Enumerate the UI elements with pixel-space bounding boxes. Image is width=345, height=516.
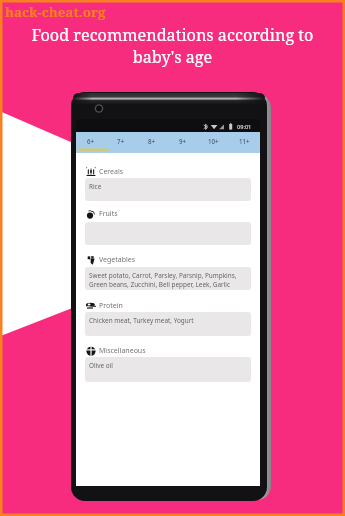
button[interactable]: Cereals (86, 167, 124, 177)
staticText: Fruits (99, 209, 118, 219)
staticText: 7+ (117, 137, 125, 145)
staticText: 9+ (179, 137, 187, 145)
staticText: Miscellaneous (99, 346, 146, 356)
button[interactable]: Fruits (86, 209, 118, 219)
staticText: Protein (99, 301, 123, 311)
staticText: Vegetables (99, 255, 136, 265)
button[interactable]: Protein (86, 301, 123, 311)
button[interactable]: 6+ (76, 132, 106, 153)
staticText: Cereals (99, 167, 124, 177)
button[interactable]: 8+ (136, 132, 167, 153)
staticText: 09:01 (237, 123, 252, 131)
button[interactable]: Chicken meat, Turkey meat, Yogurt (85, 312, 251, 336)
staticText: Sweet potato, Carrot, Parsley, Parsnip, … (89, 271, 237, 280)
button[interactable]: Olive oil (85, 357, 251, 382)
button[interactable]: Sweet potato, Carrot, Parsley, Parsnip, … (85, 267, 251, 290)
button[interactable]: Rice (85, 178, 251, 201)
button[interactable]: Miscellaneous (86, 346, 146, 356)
button[interactable]: Vegetables (86, 255, 136, 265)
staticText: 10+ (208, 137, 219, 145)
staticText: Green beans, Zucchini, Bell pepper, Leek… (89, 280, 231, 289)
staticText: 8+ (148, 137, 156, 145)
staticText: 11+ (239, 137, 250, 145)
button[interactable]: 7+ (106, 132, 136, 153)
staticText: 6+ (87, 137, 95, 145)
staticText: Food recommendations according to baby's… (8, 24, 337, 68)
staticText: Olive oil (89, 361, 113, 370)
staticText: hack-cheat.org (5, 3, 106, 21)
button[interactable]: 10+ (198, 132, 229, 153)
button[interactable]: 11+ (229, 132, 260, 153)
staticText: Rice (89, 182, 102, 191)
button[interactable]: 9+ (167, 132, 198, 153)
staticText: Chicken meat, Turkey meat, Yogurt (89, 316, 194, 325)
